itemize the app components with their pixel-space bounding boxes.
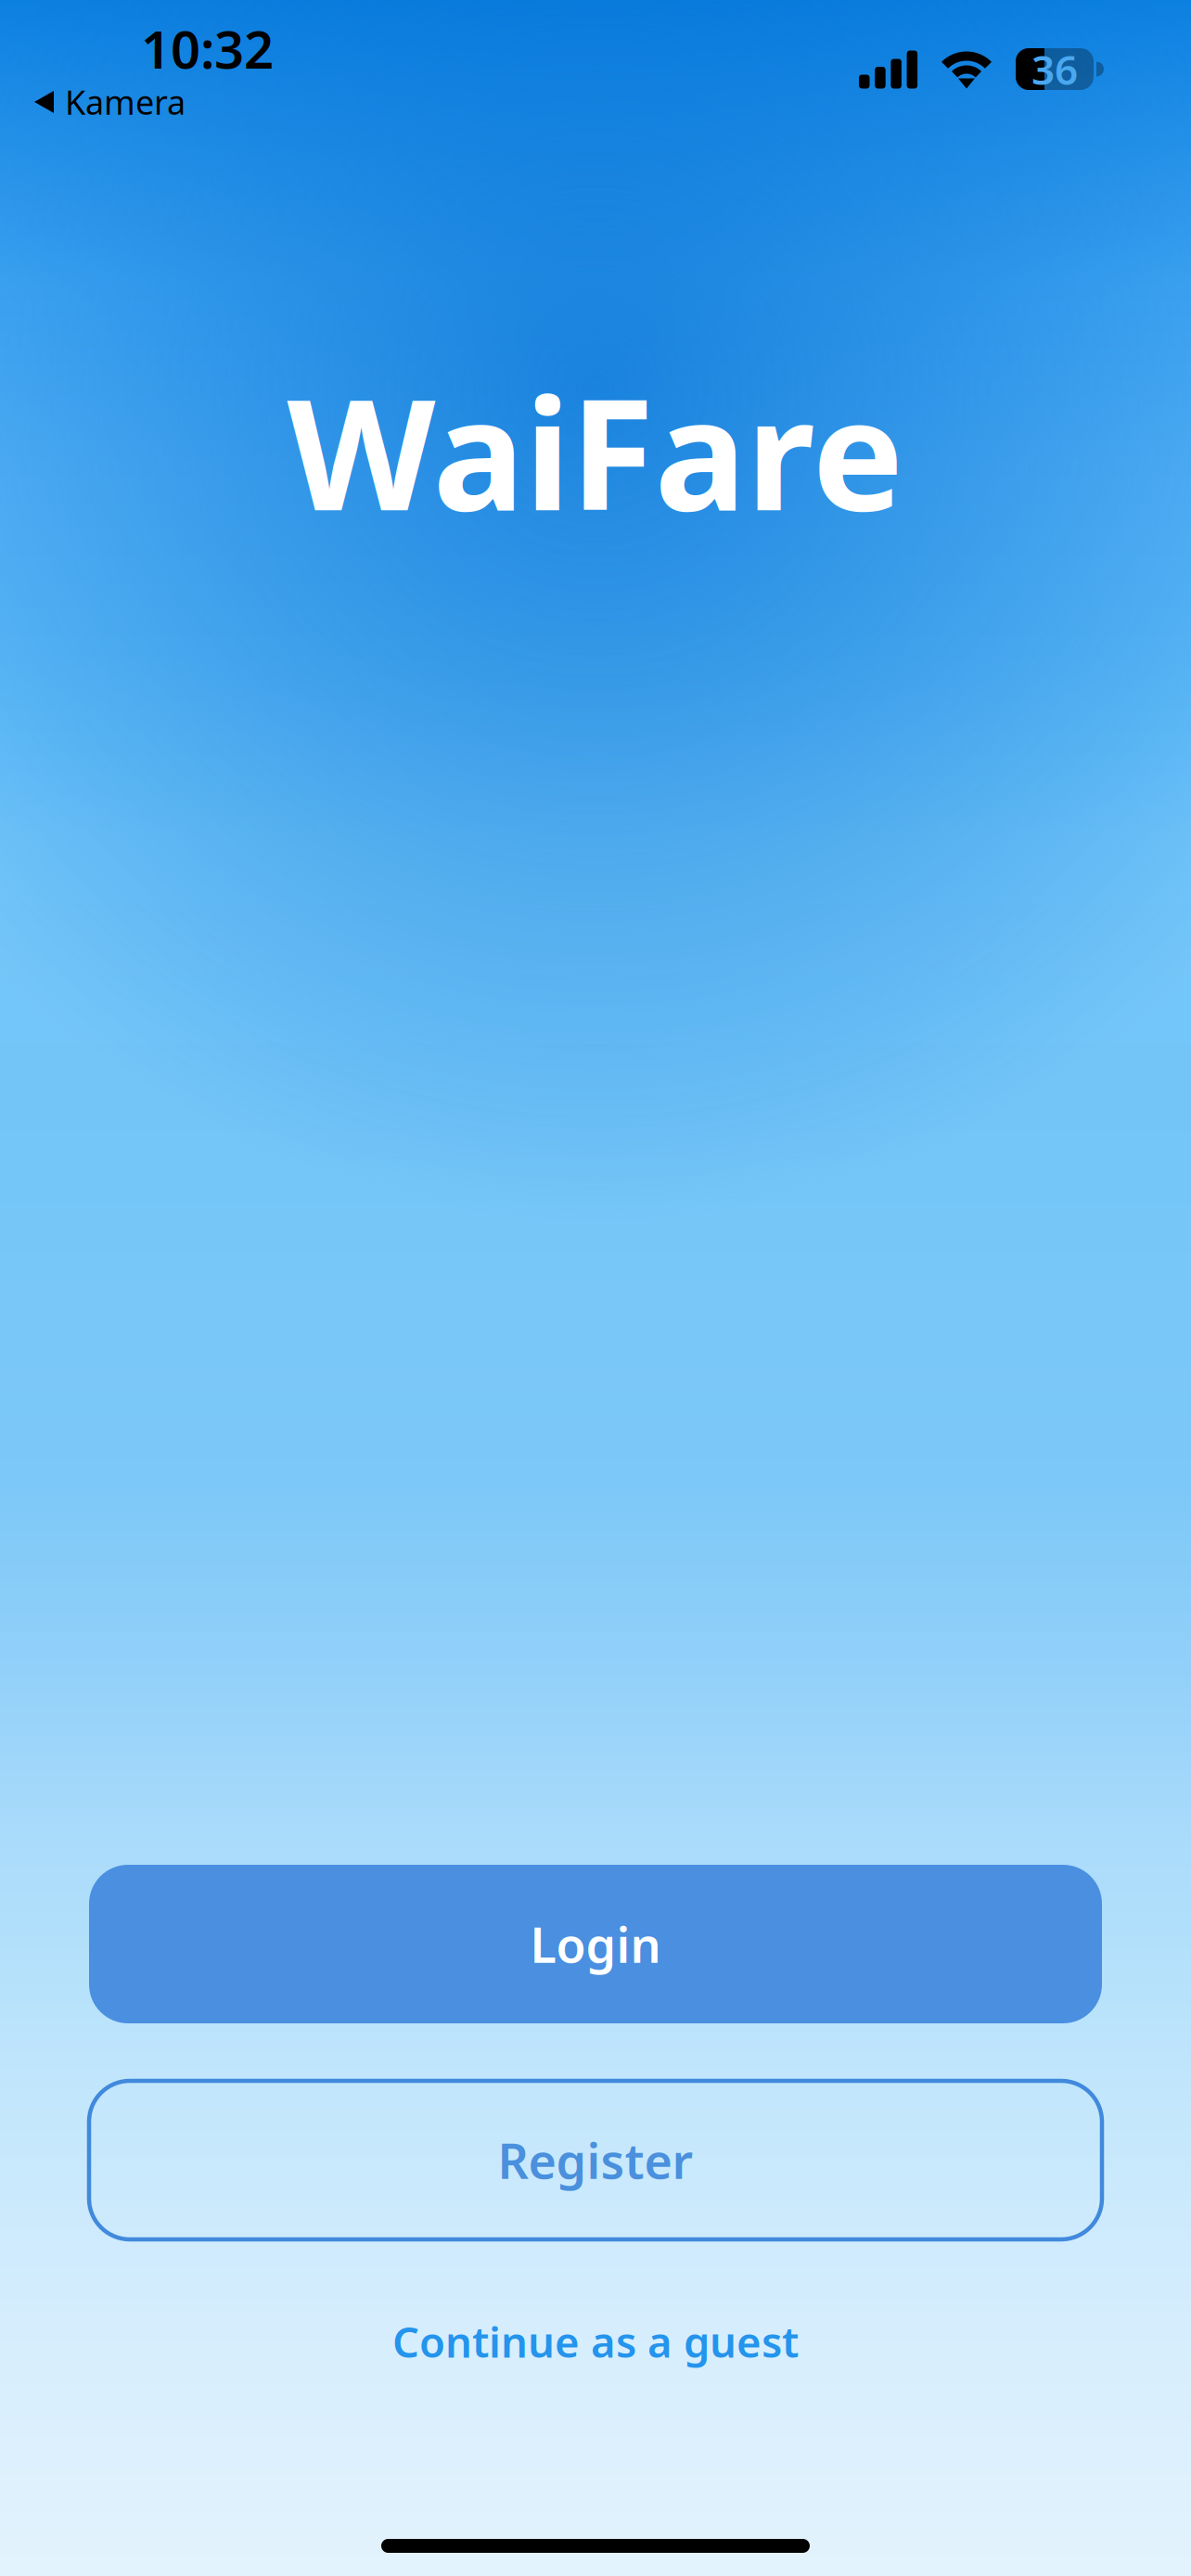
staticText: 10:32 <box>141 14 274 83</box>
staticText: Kamera <box>65 80 186 124</box>
staticText: WaiFare <box>287 349 904 552</box>
button[interactable]: Continue as a guest <box>354 2299 837 2384</box>
button[interactable]: Kamera <box>27 74 193 130</box>
button[interactable]: Register <box>89 2081 1102 2239</box>
staticText: 36 <box>1031 42 1078 96</box>
staticText: Register <box>498 2128 693 2192</box>
staticText: Login <box>530 1912 661 1976</box>
button[interactable]: Login <box>89 1865 1102 2023</box>
staticText: Continue as a guest <box>392 2313 799 2369</box>
